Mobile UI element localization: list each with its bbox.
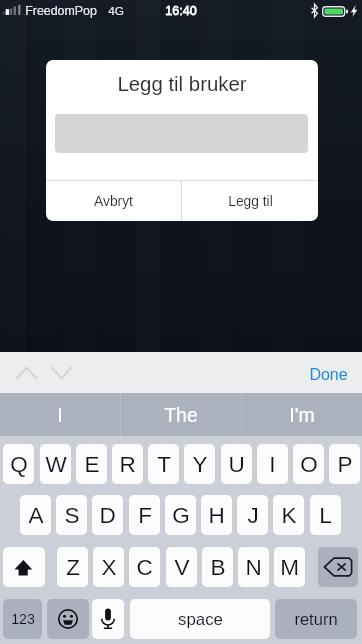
- button[interactable]: U: [221, 444, 252, 484]
- button[interactable]: Y: [184, 444, 215, 484]
- button[interactable]: I: [0, 393, 120, 436]
- staticText: Avbryt: [94, 194, 133, 209]
- button[interactable]: Q: [3, 444, 34, 484]
- staticText: 4G: [108, 4, 124, 17]
- button[interactable]: X: [93, 547, 124, 587]
- staticText: Y: [192, 452, 208, 477]
- button[interactable]: D: [92, 495, 123, 535]
- staticText: K: [281, 503, 297, 528]
- staticText: U: [228, 452, 245, 477]
- staticText: 123: [11, 611, 35, 627]
- button[interactable]: M: [274, 547, 305, 587]
- button[interactable]: Legg til: [182, 181, 318, 221]
- staticText: G: [172, 503, 190, 528]
- staticText: L: [319, 503, 332, 528]
- staticText: B: [210, 555, 226, 580]
- staticText: Q: [10, 452, 28, 477]
- staticText: The: [164, 404, 198, 426]
- button[interactable]: E: [76, 444, 107, 484]
- button[interactable]: O: [293, 444, 324, 484]
- staticText: space: [178, 610, 223, 629]
- staticText: 16:40: [165, 4, 197, 18]
- staticText: A: [28, 503, 44, 528]
- button[interactable]: Shift: [3, 547, 45, 587]
- button[interactable]: I: [257, 444, 288, 484]
- staticText: S: [64, 503, 80, 528]
- staticText: O: [300, 452, 318, 477]
- button[interactable]: space: [130, 599, 270, 639]
- staticText: return: [294, 610, 338, 628]
- button[interactable]: 123: [3, 599, 42, 639]
- staticText: W: [45, 452, 67, 477]
- staticText: FreedomPop: [25, 4, 97, 18]
- staticText: I: [269, 452, 276, 477]
- staticText: T: [157, 452, 171, 477]
- staticText: C: [136, 555, 153, 580]
- button[interactable]: R: [112, 444, 143, 484]
- staticText: H: [208, 503, 225, 528]
- button[interactable]: N: [238, 547, 269, 587]
- button[interactable]: The: [121, 393, 241, 436]
- staticText: J: [247, 503, 259, 528]
- button[interactable]: H: [201, 495, 232, 535]
- button[interactable]: T: [148, 444, 179, 484]
- staticText: I'm: [289, 404, 315, 426]
- button[interactable]: Done: [309, 366, 348, 384]
- button[interactable]: return: [275, 599, 357, 639]
- button[interactable]: G: [165, 495, 196, 535]
- button[interactable]: A: [20, 495, 51, 535]
- button[interactable]: Dictation: [92, 599, 124, 639]
- button[interactable]: C: [129, 547, 160, 587]
- button[interactable]: Backspace: [318, 547, 358, 587]
- button[interactable]: L: [310, 495, 341, 535]
- button[interactable]: S: [56, 495, 87, 535]
- button[interactable]: B: [202, 547, 233, 587]
- button[interactable]: W: [40, 444, 71, 484]
- staticText: Legg til: [228, 194, 273, 209]
- staticText: D: [99, 503, 116, 528]
- button[interactable]: Z: [57, 547, 88, 587]
- button[interactable]: F: [129, 495, 160, 535]
- button[interactable]: J: [237, 495, 268, 535]
- staticText: X: [101, 555, 117, 580]
- staticText: N: [245, 555, 262, 580]
- staticText: E: [84, 452, 100, 477]
- button[interactable]: K: [273, 495, 304, 535]
- button[interactable]: Emoji: [47, 599, 89, 639]
- button[interactable]: Avbryt: [46, 181, 181, 221]
- staticText: M: [280, 555, 299, 580]
- button[interactable]: V: [166, 547, 197, 587]
- staticText: Legg til bruker: [117, 73, 247, 96]
- button[interactable]: Next field: [51, 367, 72, 379]
- staticText: I: [57, 404, 63, 426]
- staticText: V: [174, 555, 190, 580]
- staticText: F: [138, 503, 152, 528]
- button[interactable]: Previous field: [16, 367, 37, 379]
- staticText: R: [119, 452, 136, 477]
- button[interactable]: P: [329, 444, 360, 484]
- staticText: Z: [66, 555, 80, 580]
- staticText: P: [337, 452, 353, 477]
- button[interactable]: I'm: [242, 393, 362, 436]
- staticText: Done: [309, 366, 348, 384]
